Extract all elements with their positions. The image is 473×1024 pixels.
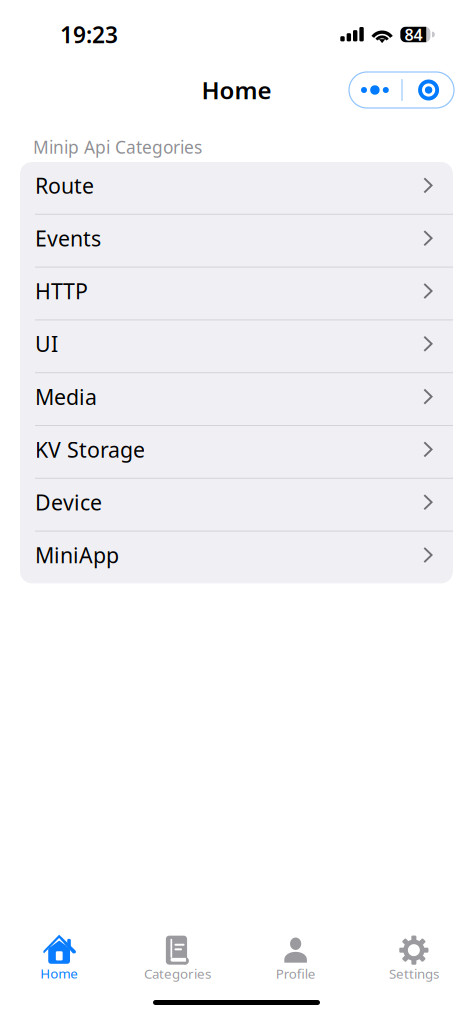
button[interactable]: Media (20, 373, 453, 426)
staticText: Categories (144, 965, 211, 982)
staticText: Device (35, 488, 102, 516)
staticText: Route (35, 171, 94, 199)
staticText: KV Storage (35, 435, 145, 463)
staticText: Media (35, 382, 97, 411)
button[interactable]: HTTP (20, 268, 453, 320)
staticText: Events (35, 224, 101, 252)
staticText: Minip Api Categories (33, 135, 202, 158)
staticText: 84 (405, 24, 423, 45)
button[interactable]: Categories (118, 936, 236, 982)
staticText: 19:23 (60, 19, 118, 49)
button[interactable]: Settings (355, 936, 473, 982)
button[interactable]: UI (20, 320, 453, 373)
staticText: MiniApp (35, 541, 119, 569)
button[interactable]: Home (0, 936, 118, 982)
button[interactable]: Route (20, 162, 453, 215)
staticText: HTTP (35, 277, 88, 305)
button[interactable]: Events (20, 215, 453, 268)
button[interactable]: Profile (236, 936, 355, 982)
staticText: Settings (389, 965, 439, 982)
staticText: Profile (276, 965, 316, 982)
staticText: UI (35, 330, 58, 358)
button[interactable]: Device (20, 479, 453, 532)
button[interactable]: MiniApp (20, 532, 453, 583)
staticText: Home (201, 74, 271, 106)
button[interactable]: KV Storage (20, 426, 453, 479)
staticText: Home (40, 964, 78, 982)
button[interactable]: Mini app controls (349, 72, 454, 108)
